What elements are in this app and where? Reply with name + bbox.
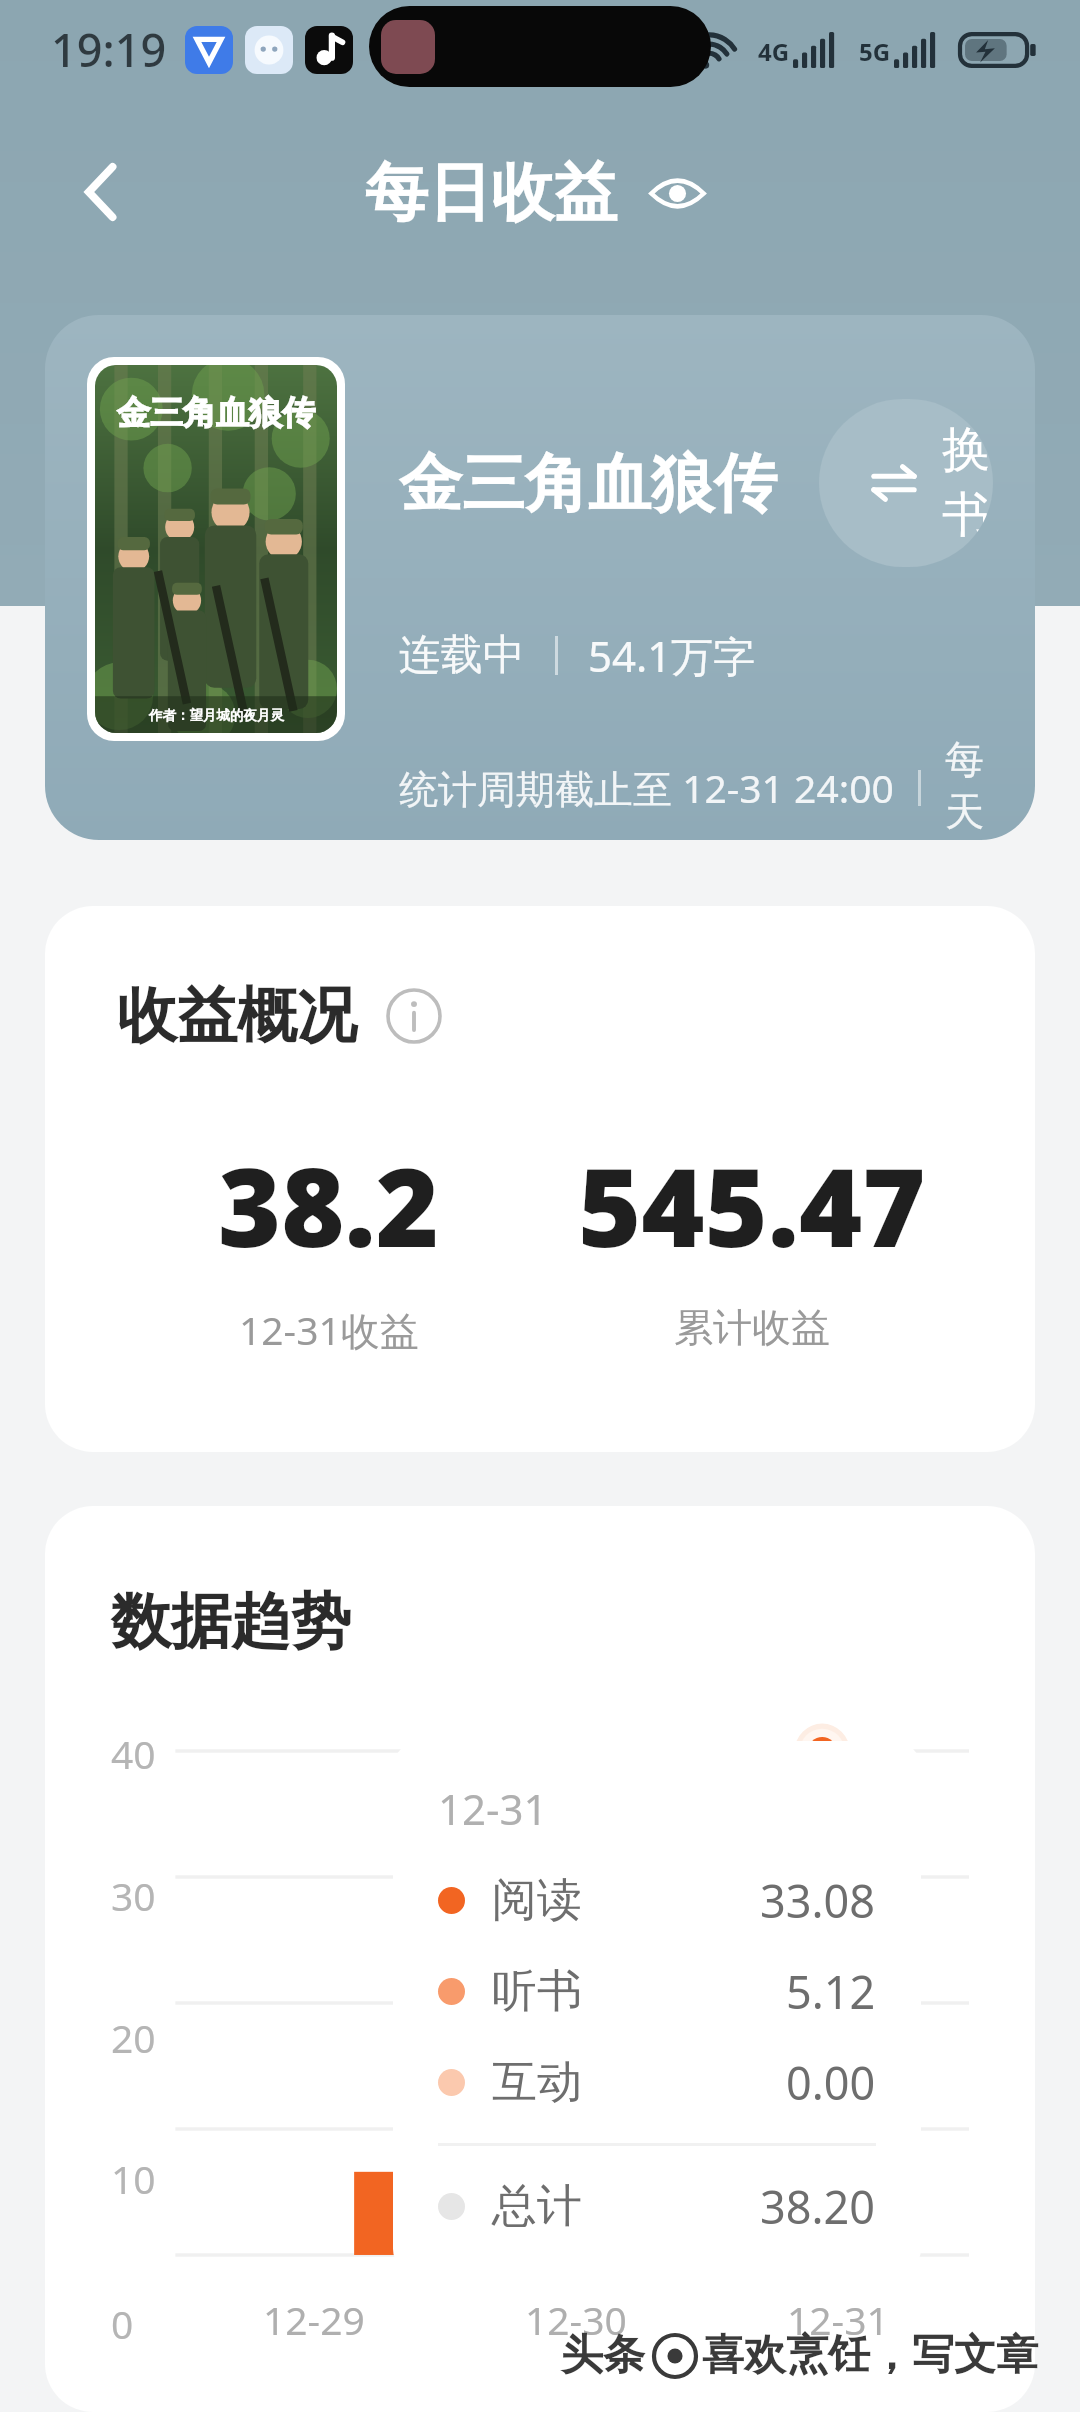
staticText: 40 xyxy=(111,1727,156,1780)
staticText: 20 xyxy=(111,2011,156,2064)
staticText: 545.47 xyxy=(578,1132,926,1279)
staticText: 38.20 xyxy=(760,2176,876,2237)
staticText: 收益概况 xyxy=(117,978,357,1054)
staticText: 互动 xyxy=(492,2054,582,2111)
staticText: 54.1万字 xyxy=(588,627,756,684)
staticText: 作者：望月城的夜月灵 xyxy=(149,707,284,724)
staticText: 头条 xyxy=(561,2329,645,2382)
staticText: 数据趋势 xyxy=(111,1584,351,1660)
staticText: 12-31收益 xyxy=(239,1303,419,1356)
button[interactable]: 金三角血狼传 xyxy=(45,315,1035,840)
staticText: 阅读 xyxy=(492,1872,582,1929)
staticText: 总计 xyxy=(492,2178,582,2235)
staticText: 12-30 xyxy=(525,2293,627,2346)
staticText: 12-31 xyxy=(438,1780,548,1837)
staticText: 5G xyxy=(859,35,891,68)
staticText: 连载中 xyxy=(399,629,525,682)
staticText: 统计周期截止至 12-31 24:00 xyxy=(399,761,894,814)
staticText: 4G xyxy=(758,35,790,68)
button[interactable]: 换书 xyxy=(819,399,993,567)
staticText: 每天12:00更新 xyxy=(945,735,993,840)
staticText: 金三角血狼传 xyxy=(117,392,315,434)
button[interactable]: 收益概况 xyxy=(45,906,1035,1452)
staticText: 38.2 xyxy=(218,1132,440,1279)
staticText: 金三角血狼传 xyxy=(399,444,777,523)
staticText: 19:19 xyxy=(51,19,167,80)
staticText: 每日收益 xyxy=(365,153,617,232)
staticText: 累计收益 xyxy=(674,1303,830,1352)
staticText: 30 xyxy=(111,1869,156,1922)
button[interactable]: Back xyxy=(30,120,174,264)
staticText: 0 xyxy=(111,2297,134,2350)
staticText: 5.12 xyxy=(786,1961,876,2022)
staticText: 0.00 xyxy=(786,2052,876,2113)
staticText: 听书 xyxy=(492,1963,582,2020)
staticText: 33.08 xyxy=(760,1870,876,1931)
button[interactable]: Toggle visibility xyxy=(638,154,716,232)
staticText: 10 xyxy=(111,2152,156,2205)
staticText: 12-29 xyxy=(263,2293,365,2346)
staticText: 12-31 xyxy=(787,2293,889,2346)
staticText: 喜欢烹饪，写文章 xyxy=(702,2329,1038,2382)
